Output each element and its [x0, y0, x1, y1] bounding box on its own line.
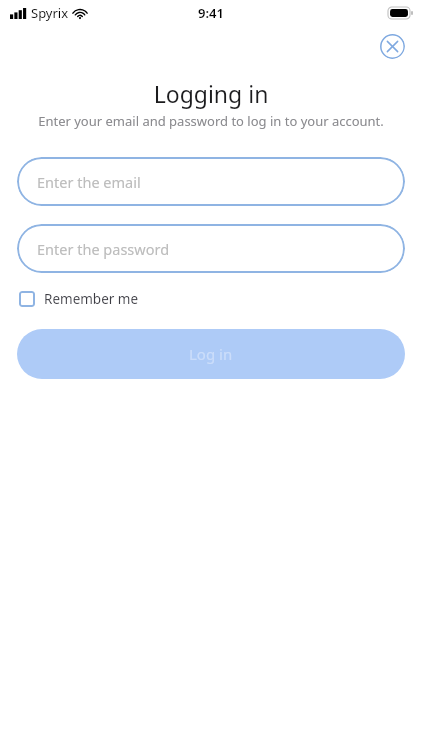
- staticText: Enter your email and password to log in …: [0, 112, 422, 130]
- staticText: Logging in: [0, 78, 422, 109]
- staticText: Enter the email: [37, 172, 141, 192]
- staticText: 9:41: [198, 4, 224, 22]
- staticText: Log in: [189, 344, 233, 364]
- staticText: Spyrix: [31, 4, 69, 22]
- button[interactable]: Close: [379, 33, 405, 59]
- button[interactable]: Enter the email: [17, 157, 405, 206]
- staticText: Enter the password: [37, 239, 170, 259]
- button[interactable]: Log in: [17, 329, 405, 379]
- staticText: Remember me: [44, 290, 139, 308]
- button[interactable]: Remember me: [18, 287, 140, 311]
- button[interactable]: Enter the password: [17, 224, 405, 273]
